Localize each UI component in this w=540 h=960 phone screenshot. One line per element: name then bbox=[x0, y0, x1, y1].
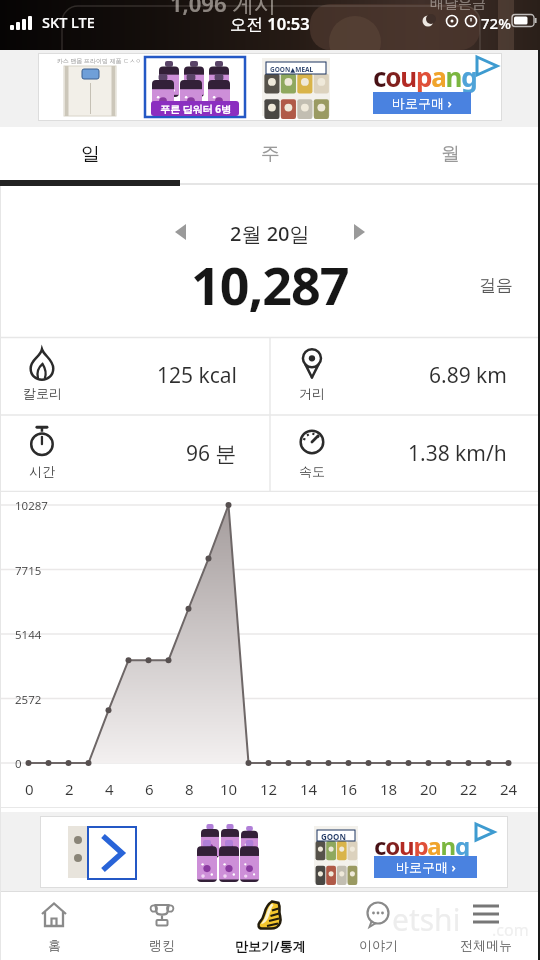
button[interactable]: 카스 맨몸 프라이밍 제품 ㄷㅅㅇ bbox=[0, 50, 540, 127]
staticText: 배달은금 bbox=[430, 0, 486, 13]
staticText: 0 bbox=[25, 779, 34, 799]
button[interactable]: 바로구매 › bbox=[373, 92, 471, 114]
staticText: 10,287 bbox=[191, 249, 349, 320]
button[interactable]: 바로구매 › bbox=[374, 856, 477, 878]
staticText: 10287 bbox=[15, 498, 48, 514]
staticText: GOON▲MEAL bbox=[270, 65, 314, 74]
staticText: 오전 10:53 bbox=[230, 12, 310, 35]
button[interactable]: 주 bbox=[180, 127, 360, 180]
staticText: 칼로리 bbox=[23, 385, 62, 401]
staticText: 18 bbox=[380, 779, 398, 799]
staticText: 1.38 km/h bbox=[408, 439, 507, 468]
staticText: 푸른 딥워터 6병 bbox=[160, 102, 231, 116]
staticText: 20 bbox=[420, 779, 438, 799]
staticText: 4 bbox=[105, 779, 114, 799]
button[interactable]: 일 bbox=[0, 127, 180, 180]
staticText: 이야기 bbox=[359, 937, 398, 953]
button[interactable]: 랭킹 bbox=[108, 892, 216, 960]
staticText: coupang bbox=[373, 59, 477, 94]
staticText: 바로구매 › bbox=[392, 94, 452, 112]
staticText: 카스 맨몸 프라이밍 제품 ㄷㅅㅇ bbox=[57, 57, 142, 65]
staticText: 8 bbox=[185, 779, 194, 799]
staticText: 22 bbox=[460, 779, 478, 799]
staticText: 바로구매 › bbox=[396, 858, 456, 876]
staticText: 1,096 게시 bbox=[170, 0, 277, 18]
staticText: 랭킹 bbox=[149, 937, 175, 953]
staticText: 6.89 km bbox=[429, 361, 507, 390]
button[interactable]: 만보기/통계 bbox=[216, 892, 324, 960]
button[interactable] bbox=[168, 216, 194, 246]
button[interactable]: 거리 bbox=[270, 337, 540, 414]
staticText: 홈 bbox=[48, 937, 61, 953]
staticText: 전체메뉴 bbox=[460, 937, 512, 953]
staticText: .com bbox=[492, 919, 529, 941]
staticText: 125 kcal bbox=[157, 361, 237, 390]
staticText: GOON bbox=[321, 831, 346, 842]
staticText: 7715 bbox=[15, 563, 42, 579]
staticText: 0 bbox=[15, 756, 22, 772]
button[interactable]: 이야기 bbox=[324, 892, 432, 960]
staticText: 2월 20일 bbox=[230, 220, 310, 247]
staticText: 월 bbox=[441, 142, 460, 166]
staticText: 시간 bbox=[29, 463, 55, 479]
staticText: 12 bbox=[260, 779, 278, 799]
button[interactable]: GOON bbox=[0, 812, 540, 891]
staticText: 96 분 bbox=[186, 439, 237, 468]
staticText: 16 bbox=[340, 779, 358, 799]
staticText: 걸음 bbox=[479, 275, 513, 296]
staticText: 24 bbox=[500, 779, 518, 799]
staticText: etshi bbox=[392, 899, 461, 940]
button[interactable]: 월 bbox=[360, 127, 540, 180]
staticText: 2572 bbox=[15, 692, 42, 708]
staticText: 만보기/통계 bbox=[235, 937, 306, 955]
button[interactable]: 시간 bbox=[0, 415, 270, 492]
button[interactable]: 칼로리 bbox=[0, 337, 270, 414]
staticText: 10 bbox=[220, 779, 238, 799]
staticText: 72% bbox=[481, 13, 511, 33]
staticText: 속도 bbox=[299, 463, 325, 479]
staticText: 거리 bbox=[299, 385, 325, 401]
button[interactable] bbox=[346, 216, 372, 246]
staticText: 2 bbox=[65, 779, 74, 799]
staticText: 일 bbox=[81, 142, 100, 166]
staticText: coupang bbox=[374, 829, 469, 862]
staticText: SKT LTE bbox=[42, 12, 95, 32]
staticText: 5144 bbox=[15, 627, 42, 643]
staticText: 주 bbox=[261, 142, 280, 166]
button[interactable]: 홈 bbox=[0, 892, 108, 960]
button[interactable]: 속도 bbox=[270, 415, 540, 492]
button[interactable]: 전체메뉴 bbox=[432, 892, 540, 960]
staticText: 14 bbox=[300, 779, 318, 799]
staticText: 6 bbox=[145, 779, 154, 799]
